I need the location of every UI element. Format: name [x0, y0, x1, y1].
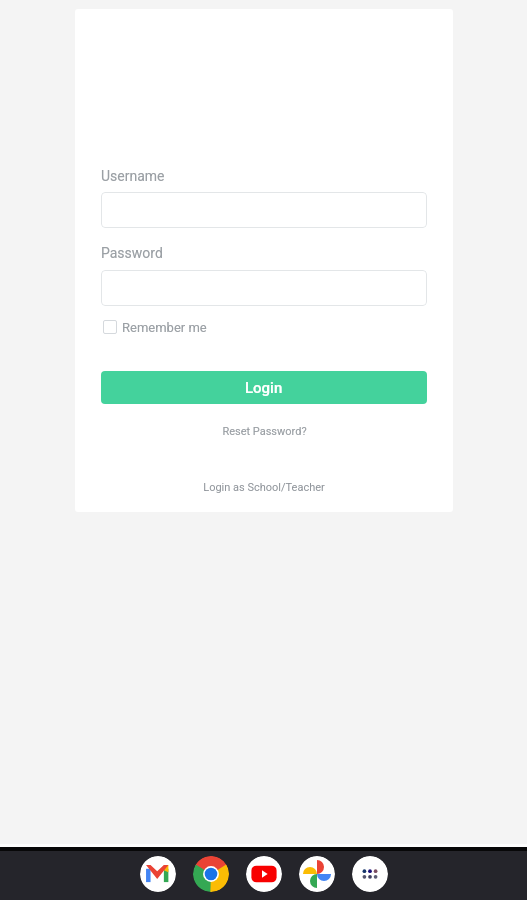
staticText: Password: [101, 245, 163, 261]
staticText: Username: [101, 168, 165, 184]
button[interactable]: Chrome: [193, 856, 229, 892]
staticText: Reset Password?: [222, 425, 307, 438]
button[interactable]: Username input: [101, 192, 427, 228]
button[interactable]: Login: [101, 371, 427, 404]
button[interactable]: Password input: [101, 270, 427, 306]
button[interactable]: All apps: [352, 856, 388, 892]
button[interactable]: Login as School/Teacher: [75, 477, 453, 497]
staticText: Login as School/Teacher: [203, 481, 325, 494]
button[interactable]: YouTube: [246, 856, 282, 892]
staticText: Login: [245, 379, 283, 397]
button[interactable]: Remember me: [103, 318, 207, 336]
button[interactable]: Google Photos: [299, 856, 335, 892]
staticText: Remember me: [122, 320, 207, 335]
button[interactable]: Gmail: [140, 856, 176, 892]
button[interactable]: Reset Password?: [75, 421, 453, 441]
